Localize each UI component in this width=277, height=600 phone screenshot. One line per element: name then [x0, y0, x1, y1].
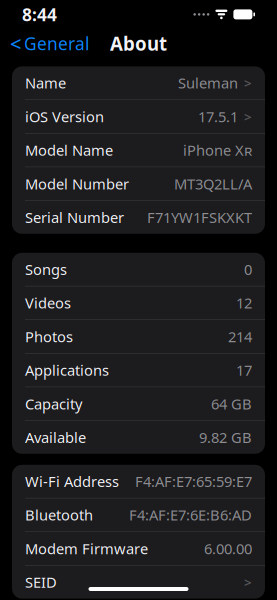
staticText: > — [244, 108, 252, 125]
staticText: Serial Number — [25, 208, 124, 227]
button[interactable]: iOS Version — [12, 100, 265, 133]
button[interactable]: SEID — [12, 566, 265, 599]
staticText: MT3Q2LL/A — [174, 174, 252, 193]
staticText: Applications — [25, 360, 109, 380]
staticText: > — [244, 573, 252, 591]
staticText: Name — [25, 73, 66, 93]
staticText: > — [244, 74, 252, 92]
staticText: SEID — [25, 572, 57, 592]
staticText: < — [10, 30, 21, 57]
staticText: Videos — [25, 293, 71, 313]
staticText: Photos — [25, 327, 73, 346]
staticText: 214 — [228, 327, 252, 346]
staticText: About — [110, 31, 167, 56]
staticText: Songs — [25, 260, 67, 279]
staticText: Available — [25, 428, 86, 447]
button[interactable]: Name — [12, 66, 265, 99]
staticText: 17.5.1 — [198, 107, 238, 126]
staticText: Model Number — [25, 174, 129, 193]
staticText: Wi-Fi Address — [25, 472, 119, 491]
staticText: Capacity — [25, 394, 82, 413]
staticText: 0 — [244, 260, 252, 279]
staticText: Bluetooth — [25, 505, 93, 525]
staticText: 9.82 GB — [199, 428, 252, 447]
staticText: Model Name — [25, 140, 113, 160]
staticText: F4:AF:E7:65:59:E7 — [135, 472, 252, 491]
staticText: 8:44 — [22, 3, 57, 26]
staticText: 17 — [236, 360, 252, 380]
button[interactable]: < — [0, 25, 97, 62]
staticText: F71YW1FSKXKT — [147, 208, 252, 227]
staticText: iPhone Xʀ — [183, 140, 252, 160]
staticText: 6.00.00 — [204, 539, 252, 558]
staticText: iOS Version — [25, 107, 104, 126]
staticText: Suleman — [178, 73, 238, 93]
staticText: 64 GB — [211, 394, 252, 413]
staticText: General — [24, 32, 89, 55]
staticText: 12 — [236, 293, 252, 313]
staticText: Modem Firmware — [25, 539, 148, 558]
staticText: F4:AF:E7:6E:B6:AD — [129, 505, 252, 525]
